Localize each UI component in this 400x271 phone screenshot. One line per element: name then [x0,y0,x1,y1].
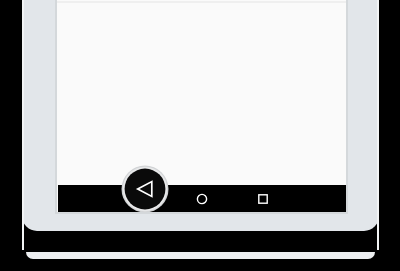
button[interactable]: Home [190,187,214,211]
button[interactable]: Recent apps [251,187,275,211]
button[interactable]: Back [121,165,169,213]
